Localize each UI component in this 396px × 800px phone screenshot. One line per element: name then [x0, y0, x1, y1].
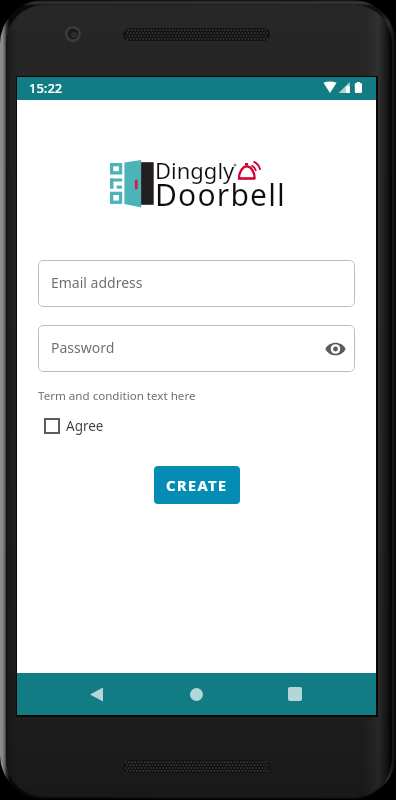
staticText: Term and condition text here [38, 388, 196, 404]
staticText: Dinggly [155, 155, 235, 185]
staticText: CREATE [166, 475, 228, 495]
button[interactable]: Agree [44, 417, 104, 435]
button[interactable]: Show password [323, 337, 347, 361]
staticText: Email address [51, 273, 143, 292]
button[interactable]: Email address [38, 260, 355, 307]
staticText: 15:22 [29, 79, 63, 97]
staticText: Password [51, 338, 115, 357]
button[interactable]: Home [175, 673, 217, 715]
button[interactable]: Password [38, 325, 355, 372]
button[interactable]: Recent apps [274, 673, 316, 715]
button[interactable]: CREATE [154, 466, 240, 504]
staticText: Doorbell [155, 174, 287, 215]
button[interactable]: Back [75, 673, 117, 715]
staticText: Agree [66, 417, 104, 435]
